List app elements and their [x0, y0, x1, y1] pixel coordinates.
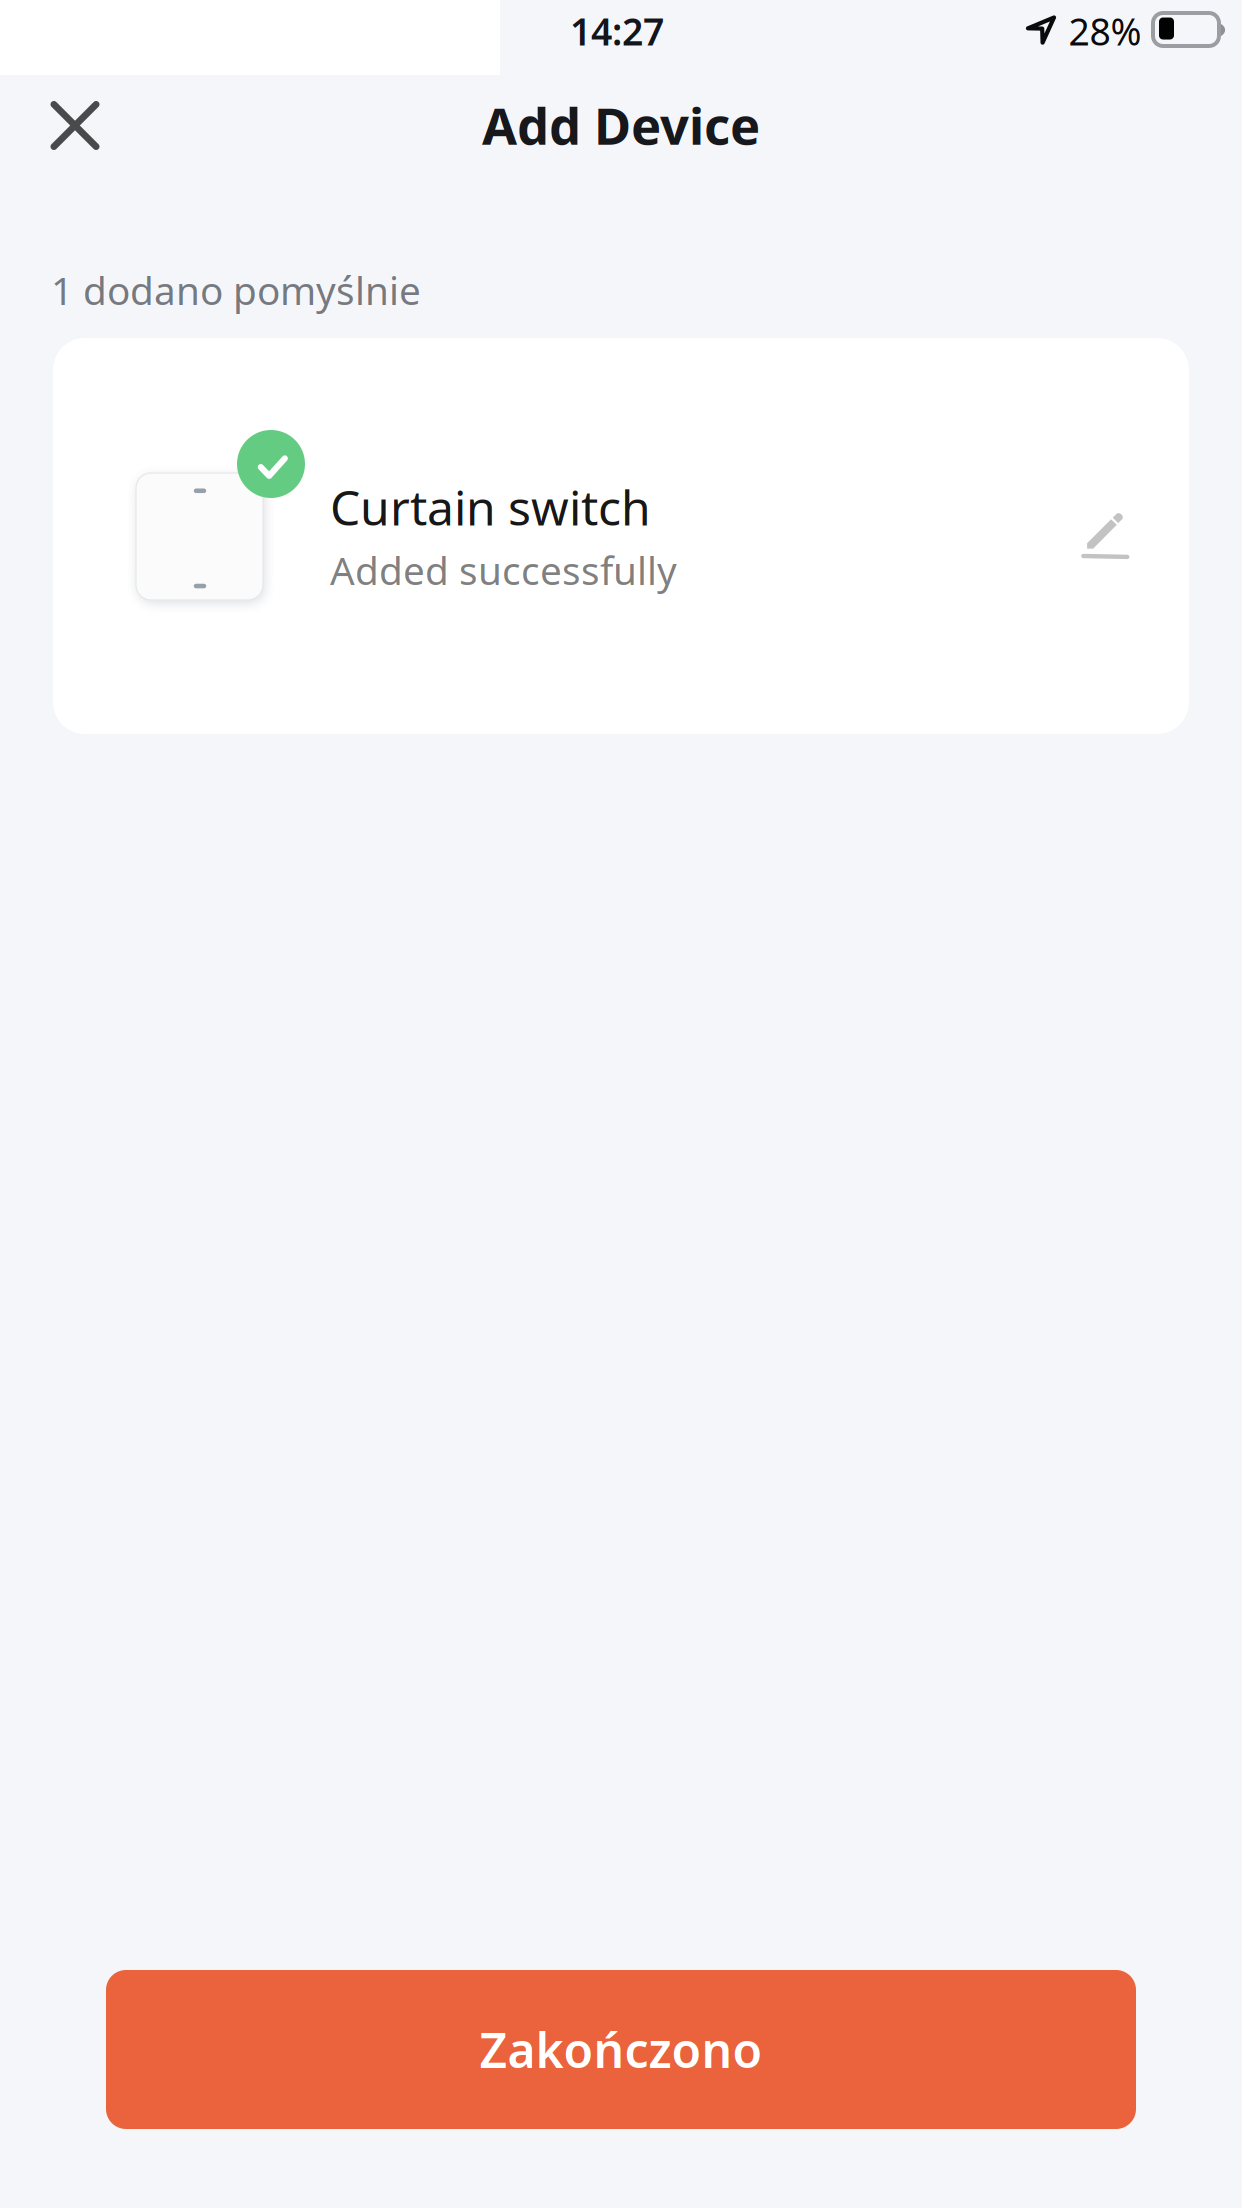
staticText: Add Device — [482, 91, 760, 159]
staticText: Added successfully — [330, 544, 677, 596]
staticText: Zakończono — [479, 2018, 762, 2081]
staticText: 28% — [1068, 6, 1141, 56]
staticText: Curtain switch — [330, 475, 651, 539]
button[interactable]: Close — [26, 76, 124, 174]
button[interactable]: Rename device — [1033, 454, 1177, 598]
button[interactable]: Zakończono — [106, 1970, 1136, 2129]
staticText: 14:27 — [570, 6, 664, 56]
staticText: 1 dodano pomyślnie — [51, 264, 421, 316]
